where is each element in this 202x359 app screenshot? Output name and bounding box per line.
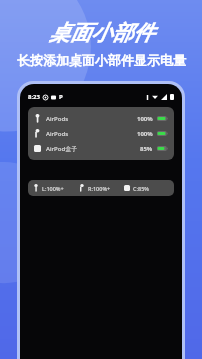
staticText: L:100%+	[42, 185, 64, 192]
button[interactable]: AirPods	[28, 126, 174, 141]
staticText: AirPods	[46, 130, 69, 138]
staticText: 100%	[137, 130, 153, 138]
staticText: 100%	[137, 115, 153, 123]
staticText: 桌面小部件	[49, 20, 154, 46]
staticText: 长按添加桌面小部件显示电量	[17, 52, 186, 68]
staticText: R:100%+	[88, 185, 111, 192]
staticText: C:85%	[133, 185, 149, 192]
button[interactable]: AirPods battery widget	[28, 180, 174, 196]
staticText: 8:23	[28, 93, 40, 101]
button[interactable]: AirPods	[28, 111, 174, 126]
staticText: AirPod盒子	[46, 145, 78, 153]
staticText: P	[59, 93, 63, 101]
button[interactable]: AirPod盒子	[28, 141, 174, 156]
staticText: AirPods	[46, 115, 69, 123]
staticText: 85%	[140, 145, 153, 153]
